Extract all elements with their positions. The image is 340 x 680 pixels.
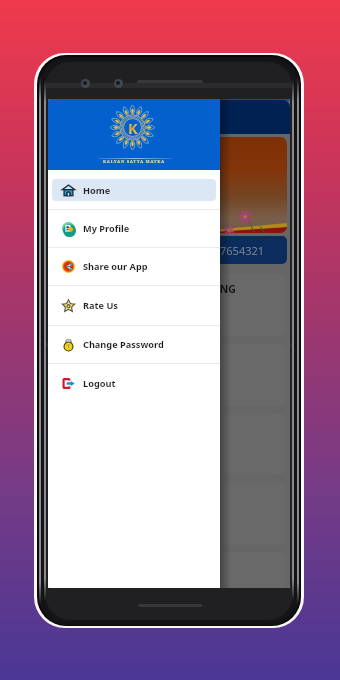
- staticText: K: [128, 118, 138, 138]
- staticText: MILAN MORNING: [122, 352, 215, 366]
- button[interactable]: My Profile: [52, 210, 216, 247]
- button[interactable]: SRIDEVI MORNING: [51, 483, 286, 545]
- button[interactable]: MILAN MORNING: [51, 344, 286, 406]
- staticText: KALYAN SATTA MATKA: [103, 158, 165, 164]
- staticText: Logout: [83, 377, 116, 390]
- button[interactable]: Home: [52, 179, 216, 201]
- staticText: Home: [83, 184, 111, 197]
- staticText: My Profile: [83, 222, 130, 235]
- staticText: SHREE GANESH MORNING: [101, 282, 236, 296]
- staticText: WHATSAPP : 9876543210 987654321: [73, 243, 265, 258]
- button[interactable]: Rate Us: [52, 286, 216, 325]
- button[interactable]: TIME BAZAR: [51, 552, 286, 588]
- staticText: Rate Us: [83, 299, 118, 312]
- staticText: 10:15 AM TO 11:15 AM: [119, 323, 218, 332]
- button[interactable]: Logout: [52, 364, 216, 402]
- button[interactable]: KARNATAKA DAY: [51, 413, 286, 475]
- staticText: Share our App: [83, 260, 148, 273]
- button[interactable]: Share our App: [52, 248, 216, 285]
- button[interactable]: SHREE GANESH MORNING: [51, 274, 286, 336]
- button[interactable]: Change Password: [52, 326, 216, 363]
- staticText: Change Password: [83, 338, 164, 351]
